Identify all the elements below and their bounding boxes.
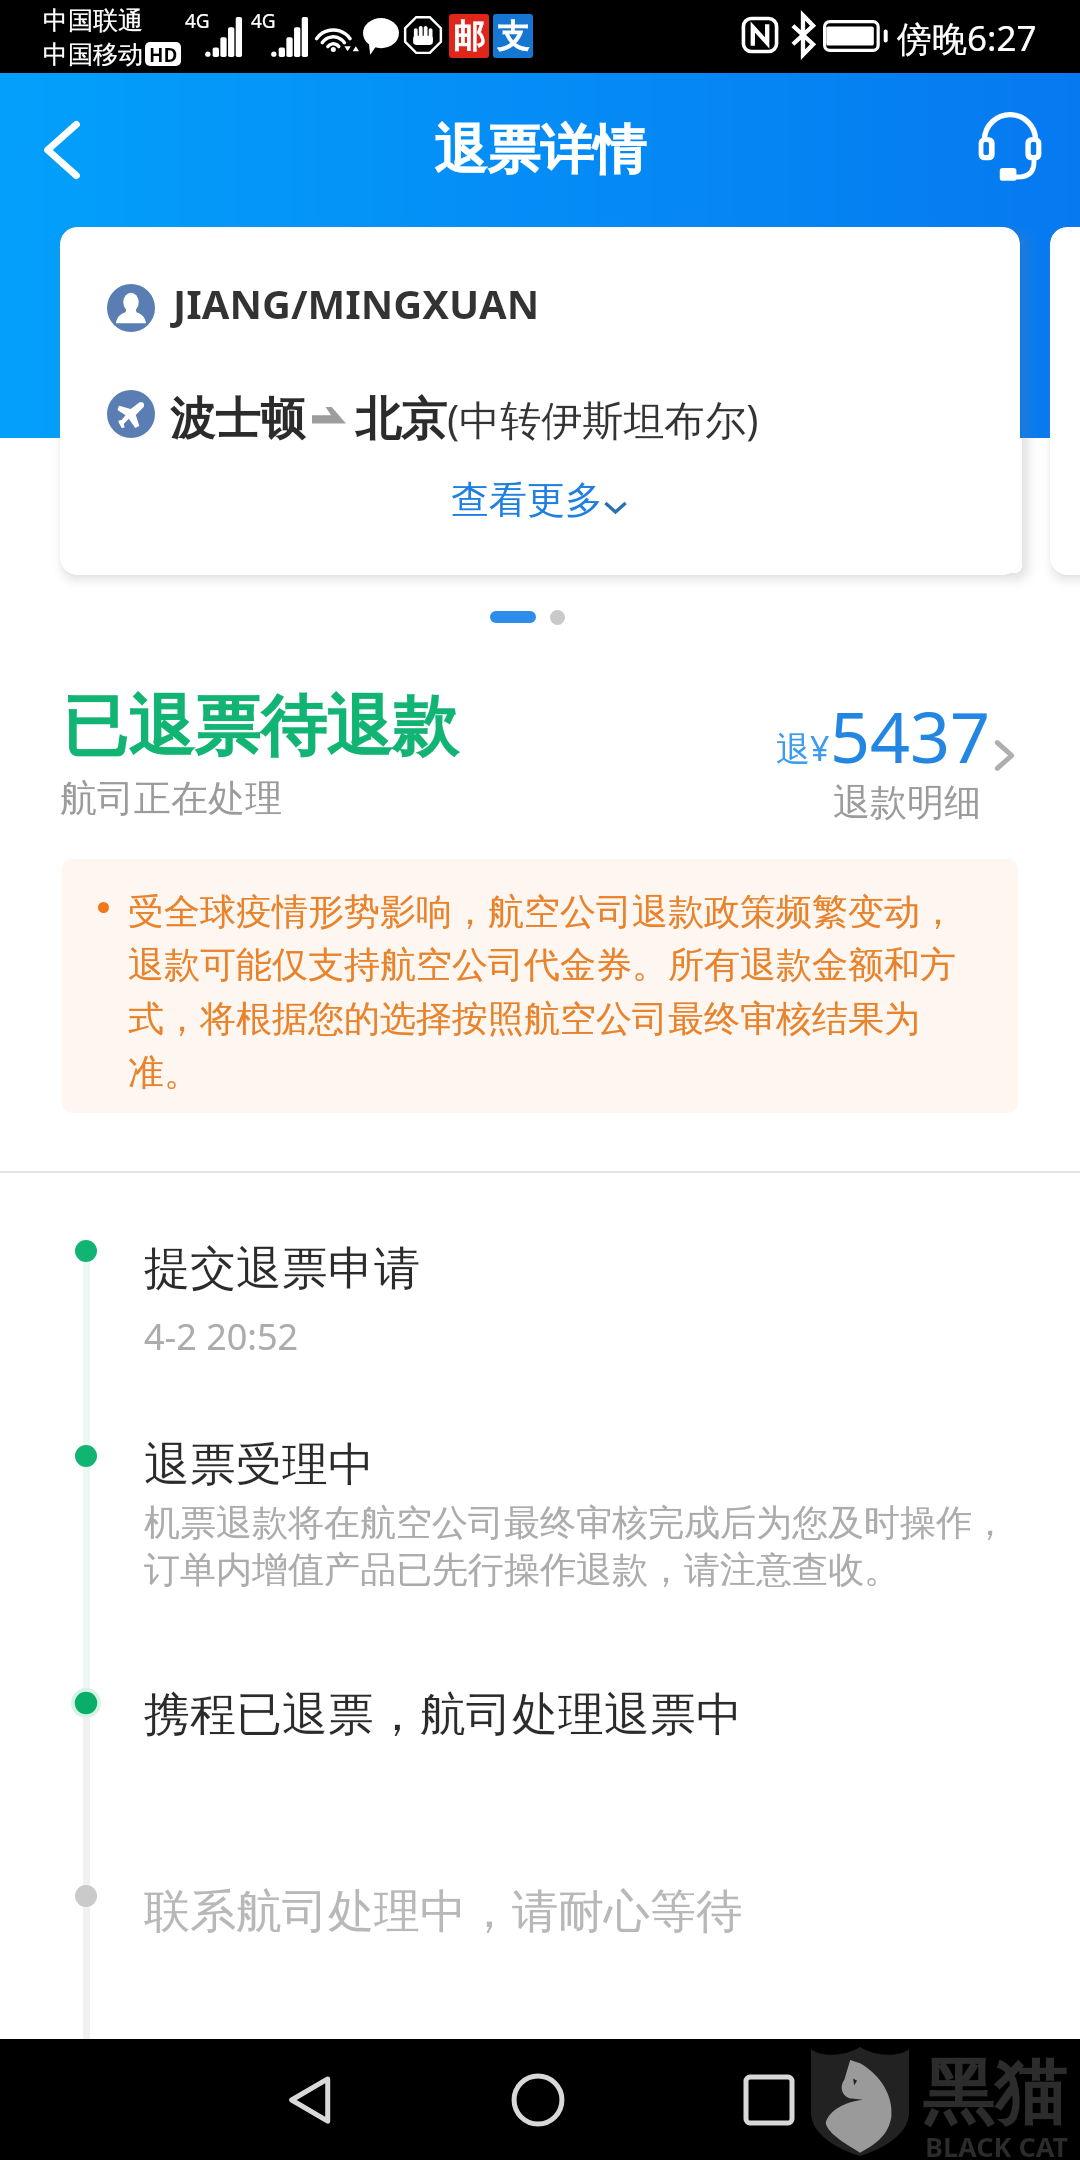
staticText: 航司正在处理: [60, 775, 282, 822]
button[interactable]: 已退票待退款: [0, 680, 1080, 840]
button[interactable]: 第二页: [544, 604, 570, 630]
staticText: 退票详情: [434, 117, 646, 184]
staticText: 4G: [185, 8, 210, 34]
button[interactable]: 提交退票申请: [144, 1240, 1024, 1361]
staticText: 4G: [251, 8, 276, 34]
staticText: 支: [497, 16, 529, 56]
staticText: 提交退票申请: [144, 1240, 420, 1298]
staticText: 4-2 20:52: [144, 1312, 299, 1361]
staticText: HD: [149, 42, 178, 66]
button[interactable]: 返回: [266, 2039, 356, 2160]
staticText: 查看更多: [451, 476, 603, 524]
staticText: 已退票待退款: [62, 685, 458, 768]
staticText: 携程已退票，航司处理退票中: [144, 1686, 742, 1744]
staticText: 波士顿: [170, 391, 305, 448]
staticText: 联系航司处理中，请耐心等待: [144, 1883, 742, 1941]
staticText: 机票退款将在航空公司最终审核完成后为您及时操作，订单内增值产品已先行操作退款，请…: [144, 1500, 1024, 1593]
staticText: 北京(中转伊斯坦布尔): [355, 391, 759, 449]
button[interactable]: 联系航司处理中，请耐心等待: [144, 1883, 1024, 1941]
staticText: 傍晚6:27: [897, 14, 1037, 62]
staticText: 中国移动: [43, 39, 143, 70]
button[interactable]: 返回: [16, 104, 108, 196]
button[interactable]: 主页: [493, 2039, 583, 2160]
staticText: 退票受理中: [144, 1436, 374, 1494]
staticText: 邮: [453, 16, 485, 56]
staticText: BLACK CAT: [925, 2128, 1069, 2160]
button[interactable]: 第一页: [486, 604, 540, 630]
staticText: JIANG/MINGXUAN: [173, 276, 540, 330]
staticText: 退¥: [776, 725, 830, 771]
button[interactable]: 携程已退票，航司处理退票中: [144, 1686, 1024, 1744]
button[interactable]: 最近任务: [724, 2039, 814, 2160]
staticText: 退款明细: [833, 779, 981, 826]
button[interactable]: JIANG/MINGXUAN: [60, 227, 1020, 575]
staticText: 黑猫: [922, 2048, 1066, 2139]
button[interactable]: 退票受理中: [144, 1436, 1024, 1593]
button[interactable]: 下一张乘机人卡片: [1050, 227, 1080, 575]
staticText: 受全球疫情形势影响，航空公司退款政策频繁变动，退款可能仅支持航空公司代金券。所有…: [128, 889, 968, 1096]
staticText: 中国联通: [43, 5, 143, 36]
button[interactable]: 客服: [962, 97, 1058, 193]
button[interactable]: 查看更多: [434, 467, 644, 535]
staticText: 5437: [830, 688, 991, 783]
